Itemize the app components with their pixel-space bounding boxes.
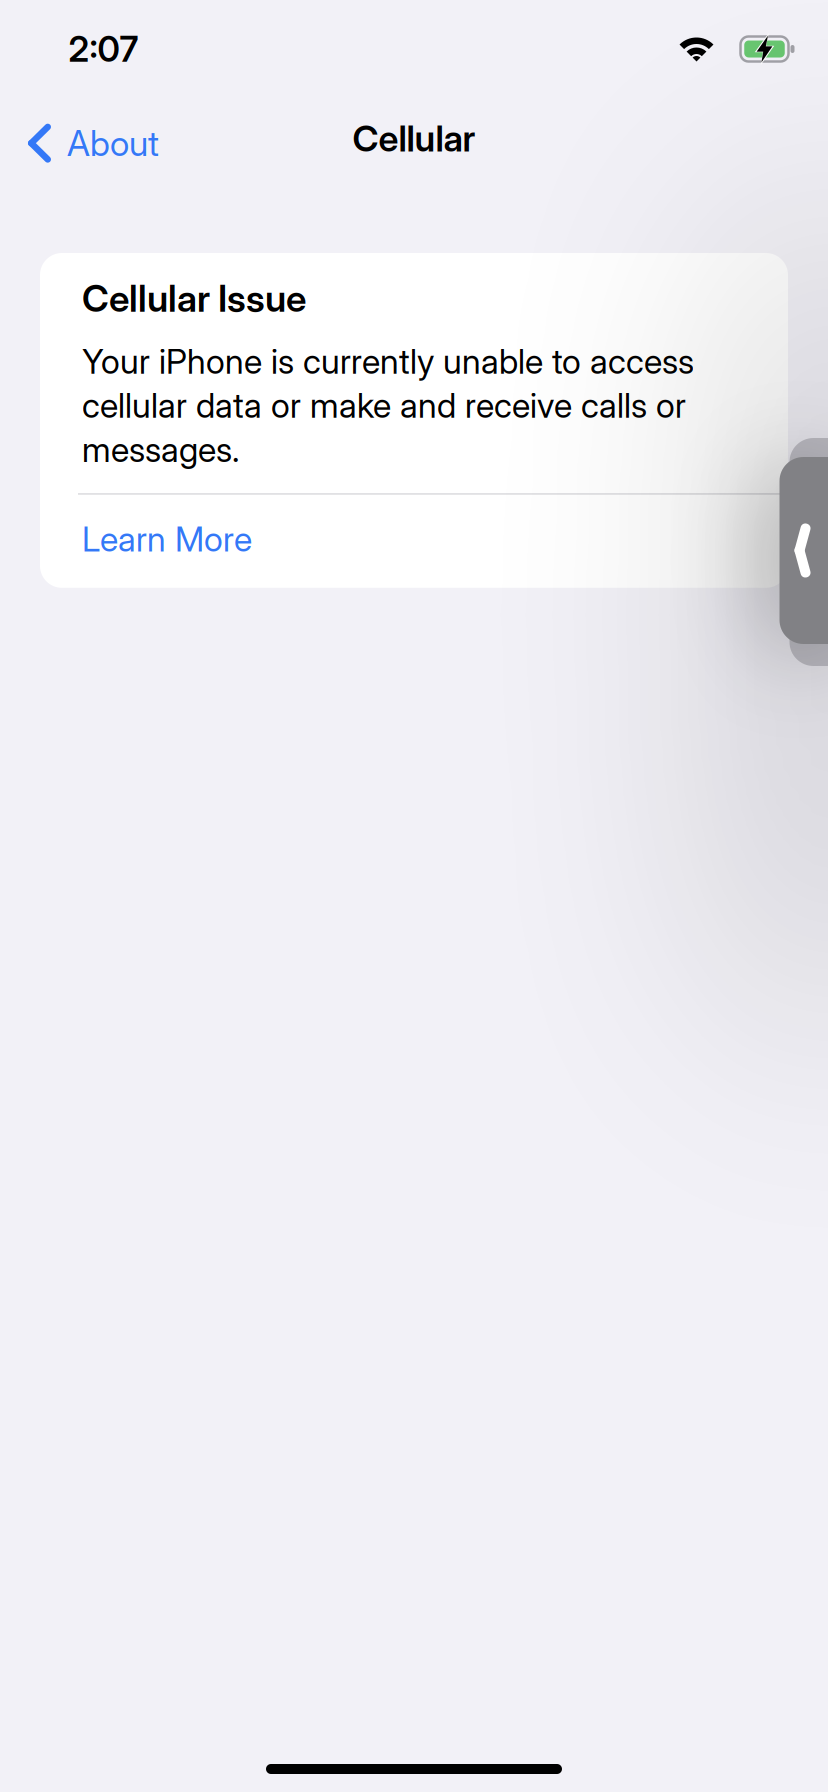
button[interactable]: Learn More [40,495,252,588]
staticText: Learn More [82,519,252,560]
button[interactable] [779,457,828,644]
staticText: Cellular [352,117,475,160]
staticText: About [67,122,159,164]
staticText: cellular data or make and receive calls … [82,385,686,426]
staticText: 2:07 [68,28,138,70]
button[interactable]: About [28,122,159,164]
staticText: Cellular Issue [82,276,306,321]
staticText: messages. [82,429,239,470]
staticText: Your iPhone is currently unable to acces… [82,341,694,382]
